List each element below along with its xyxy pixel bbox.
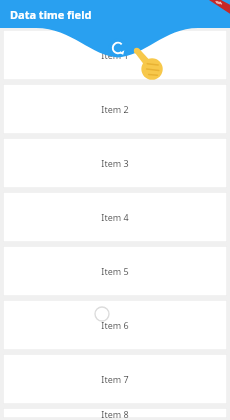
button[interactable]: Item 6 bbox=[3, 300, 227, 350]
staticText: Item 2 bbox=[101, 103, 129, 115]
staticText: Item 5 bbox=[101, 265, 129, 277]
staticText: Item 8 bbox=[101, 408, 129, 418]
button[interactable]: Item 2 bbox=[3, 84, 227, 134]
staticText: Item 7 bbox=[101, 373, 129, 385]
button[interactable]: Item 5 bbox=[3, 246, 227, 296]
staticText: Data time field bbox=[10, 7, 92, 22]
button[interactable]: Item 3 bbox=[3, 138, 227, 188]
staticText: Item 6 bbox=[101, 319, 129, 331]
button[interactable]: Item 8 bbox=[3, 408, 227, 418]
staticText: Item 4 bbox=[101, 211, 129, 223]
button[interactable]: Item 7 bbox=[3, 354, 227, 404]
button[interactable]: Item 1 bbox=[3, 30, 227, 80]
button[interactable]: Item 4 bbox=[3, 192, 227, 242]
staticText: Item 1 bbox=[101, 49, 129, 61]
staticText: Item 3 bbox=[101, 157, 129, 169]
